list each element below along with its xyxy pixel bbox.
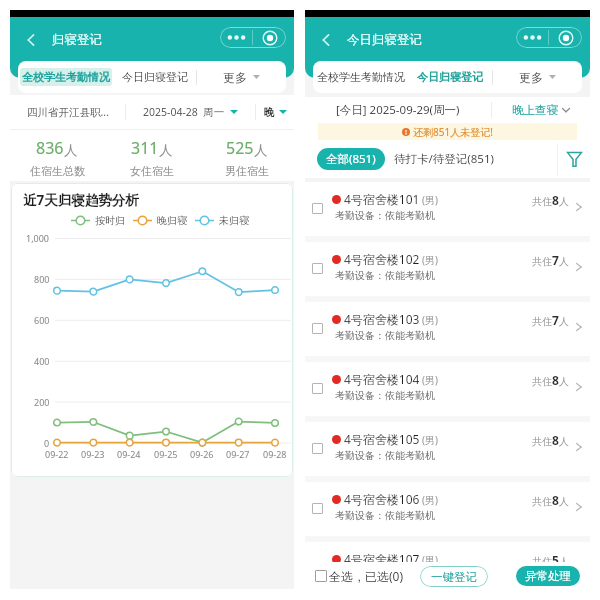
staticText: 400 [34,355,50,367]
staticText: 考勤设备：依能考勤机 [335,569,435,582]
staticText: (男) [422,433,438,447]
staticText: 全部(851) [326,151,376,167]
staticText: 人 [559,195,569,208]
button[interactable]: 全校学生考勤情况 [18,68,112,86]
staticText: 4号宿舍楼104 [344,371,420,387]
staticText: 更多 [519,70,543,85]
staticText: 人 [64,142,78,159]
button[interactable]: 更多 [493,61,582,93]
staticText: 09-25 [154,448,178,460]
button[interactable]: 待打卡/待登记(851) [390,148,498,170]
staticText: (男) [422,253,438,267]
staticText: 5 [552,552,559,568]
staticText: 今日归寝登记 [417,70,483,84]
button[interactable]: 全选，已选(0) [315,568,404,584]
staticText: 考勤设备：依能考勤机 [335,209,435,222]
staticText: 1,000 [26,232,50,244]
staticText: 晚归寝 [157,214,187,227]
staticText: 全校学生考勤情况 [22,70,110,84]
button[interactable]: 全部(851) [317,148,385,170]
staticText: 8 [552,492,559,508]
button[interactable]: 晚上查寝 [492,97,590,123]
staticText: 09-24 [117,448,141,460]
staticText: 4号宿舍楼103 [344,311,420,327]
staticText: 共住 [532,315,552,328]
staticText: 836 [36,137,64,159]
button[interactable]: 4号宿舍楼102 [305,242,590,296]
staticText: 8 [552,432,559,448]
staticText: (男) [422,493,438,507]
staticText: 考勤设备：依能考勤机 [335,269,435,282]
staticText: 人 [254,142,268,159]
staticText: 共住 [532,255,552,268]
staticText: 09-27 [226,448,250,460]
staticText: 800 [34,273,50,285]
button[interactable]: 4号宿舍楼104 [305,362,590,416]
button[interactable]: 晚 [256,95,294,129]
staticText: 女住宿生 [130,164,174,178]
staticText: 共住 [532,195,552,208]
staticText: 今日归寝登记 [122,70,188,84]
staticText: 200 [34,396,50,408]
staticText: 晚 [264,106,275,119]
staticText: 归寝登记 [52,32,102,48]
button[interactable]: 更多 [197,61,286,93]
staticText: 全校学生考勤情况 [317,70,405,84]
staticText: 全选，已选(0) [329,568,404,584]
button[interactable]: Filter [558,140,590,178]
button[interactable]: 异常处理 [516,566,580,586]
staticText: 一键登记 [431,570,477,584]
staticText: 住宿生总数 [30,164,85,178]
staticText: 更多 [223,70,247,85]
button[interactable]: Back [21,30,41,50]
staticText: 4号宿舍楼106 [344,491,420,507]
staticText: 共住 [532,555,552,568]
button[interactable]: 2025-04-28 周一 [126,95,255,129]
button[interactable]: [今日] 2025-09-29(周一) [305,97,491,123]
staticText: 待打卡/待登记(851) [394,151,494,167]
staticText: 未归寝 [219,214,249,227]
staticText: 晚上查寝 [512,103,558,117]
staticText: 考勤设备：依能考勤机 [335,449,435,462]
button[interactable]: 四川省开江县职... [10,95,125,129]
button[interactable]: 全校学生考勤情况 [313,68,407,86]
staticText: 4号宿舍楼102 [344,251,420,267]
staticText: 考勤设备：依能考勤机 [335,389,435,402]
staticText: 4号宿舍楼105 [344,431,420,447]
staticText: (男) [422,553,438,567]
button[interactable]: 4号宿舍楼103 [305,302,590,356]
staticText: 还剩851人未登记! [413,125,493,139]
button[interactable]: 4号宿舍楼106 [305,482,590,536]
staticText: 人 [559,555,569,568]
button[interactable]: More options [220,27,286,48]
button[interactable]: 今日归寝登记 [415,68,485,86]
staticText: 09-23 [81,448,105,460]
staticText: 0 [44,437,50,449]
staticText: 600 [34,314,50,326]
staticText: (男) [422,193,438,207]
staticText: (男) [422,313,438,327]
staticText: 2025-04-28 周一 [143,105,225,119]
button[interactable]: 4号宿舍楼107 [305,542,590,590]
staticText: 四川省开江县职... [27,105,109,119]
button[interactable]: 一键登记 [420,566,488,587]
staticText: 人 [559,315,569,328]
button[interactable]: 4号宿舍楼101 [305,182,590,236]
staticText: 共住 [532,375,552,388]
staticText: 人 [559,435,569,448]
staticText: 人 [559,255,569,268]
staticText: 09-26 [190,448,214,460]
button[interactable]: More options [516,27,582,48]
staticText: 525 [226,137,254,159]
staticText: 09-28 [263,448,287,460]
button[interactable]: 4号宿舍楼105 [305,422,590,476]
staticText: 人 [559,375,569,388]
button[interactable]: Back [316,30,336,50]
staticText: 按时归 [95,214,125,227]
staticText: 男住宿生 [225,164,269,178]
button[interactable]: 今日归寝登记 [120,68,190,86]
staticText: 09-22 [45,448,69,460]
staticText: 7 [552,252,559,268]
staticText: 人 [159,142,173,159]
staticText: 今日归寝登记 [347,32,422,48]
